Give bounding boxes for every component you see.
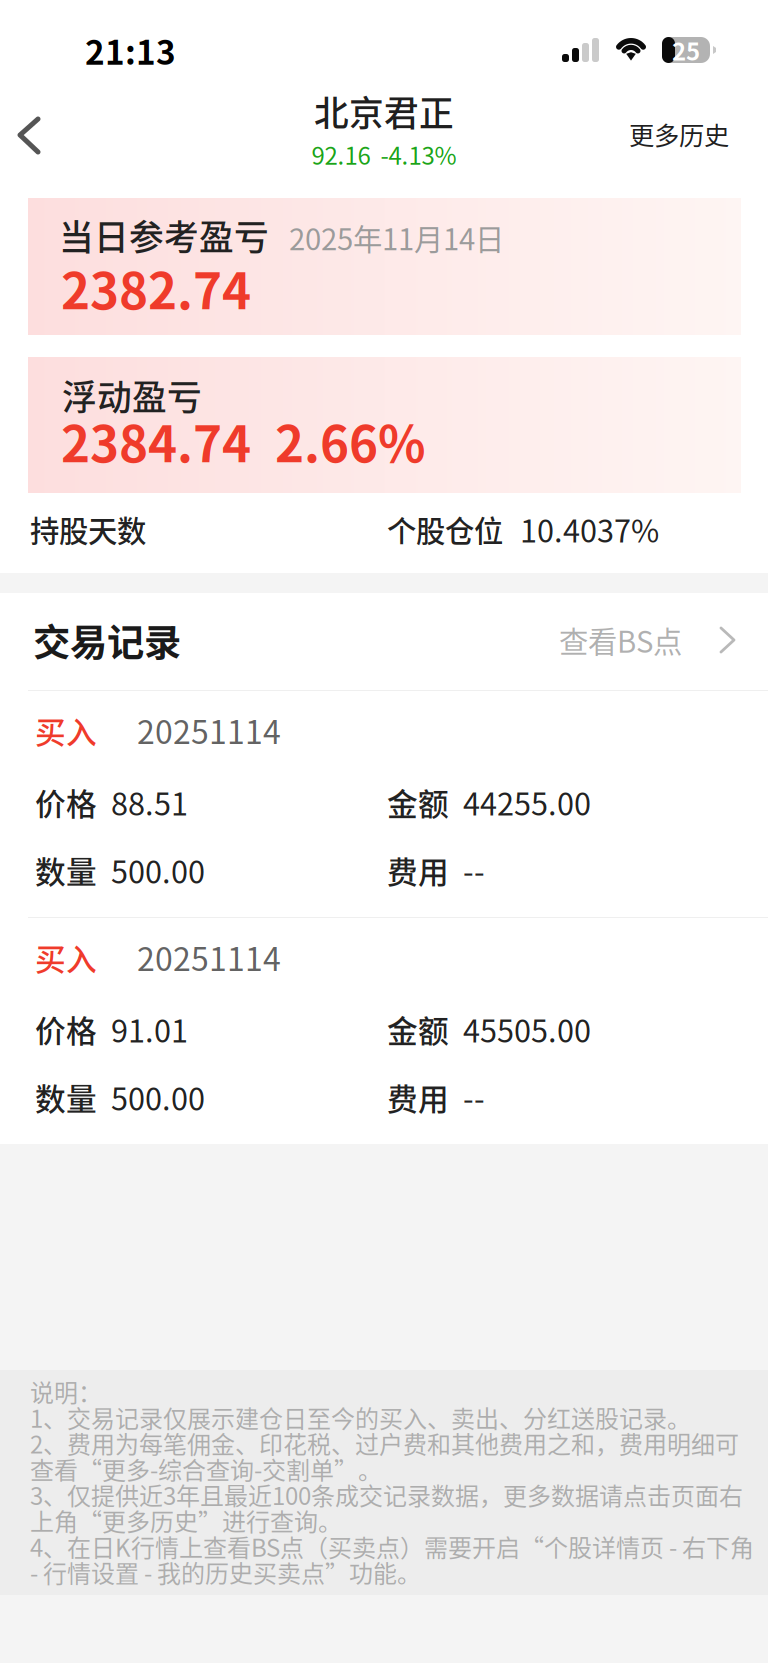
staticText: 说明： [30, 1374, 102, 1409]
staticText: 45505.00 [463, 1007, 591, 1051]
staticText: 500.00 [111, 848, 205, 892]
staticText: 1、交易记录仅展示建仓日至今的买入、卖出、分红送股记录。 [30, 1400, 691, 1435]
staticText: 20251114 [137, 934, 281, 980]
button[interactable]: 更多历史 [604, 96, 754, 172]
staticText: 上角“更多历史”进行查询。 [30, 1503, 342, 1538]
staticText: 91.01 [111, 1007, 188, 1051]
staticText: 费用 [387, 1075, 449, 1119]
staticText: 数量 [35, 1075, 97, 1119]
staticText: 查看“更多-综合查询-交割单”。 [30, 1451, 382, 1486]
staticText: 价格 [35, 780, 97, 824]
staticText: 500.00 [111, 1075, 205, 1119]
staticText: 25 [672, 33, 700, 67]
staticText: -- [463, 848, 485, 892]
button[interactable]: 返回 [0, 88, 84, 180]
staticText: - 行情设置 - 我的历史买卖点”功能。 [30, 1555, 421, 1589]
staticText: 当日参考盈亏 [59, 210, 269, 260]
staticText: 3、仅提供近3年且最近100条成交记录数据，更多数据请点击页面右 [30, 1477, 743, 1512]
staticText: 金额 [387, 1007, 449, 1051]
staticText: 20251114 [137, 707, 281, 753]
staticText: 4、在日K行情上查看BS点（买卖点）需要开启“个股详情页 - 右下角 [30, 1529, 754, 1564]
staticText: 2025年11月14日 [289, 216, 504, 259]
staticText: 2、费用为每笔佣金、印花税、过户费和其他费用之和，费用明细可 [30, 1426, 739, 1460]
staticText: 44255.00 [463, 780, 591, 824]
staticText: 浮动盈亏 [62, 370, 202, 420]
staticText: 更多历史 [629, 116, 729, 152]
button[interactable]: 查看BS点 [472, 603, 737, 677]
staticText: 21:13 [85, 26, 176, 74]
staticText: 2382.74 [61, 252, 251, 323]
staticText: 88.51 [111, 780, 188, 824]
staticText: -- [463, 1075, 485, 1119]
staticText: 持股天数 [30, 508, 146, 550]
staticText: 北京君正 [314, 86, 454, 136]
staticText: 价格 [35, 1007, 97, 1051]
staticText: 数量 [35, 848, 97, 892]
staticText: 个股仓位 [387, 508, 503, 550]
staticText: 92.16 -4.13% [311, 137, 456, 172]
staticText: 交易记录 [33, 613, 181, 667]
staticText: 费用 [387, 848, 449, 892]
staticText: 10.4037% [520, 507, 659, 551]
staticText: 2.66% [275, 405, 426, 476]
staticText: 查看BS点 [559, 619, 682, 661]
staticText: 金额 [387, 780, 449, 824]
staticText: 2384.74 [61, 405, 251, 476]
staticText: 买入 [35, 935, 97, 979]
staticText: 买入 [35, 708, 97, 752]
